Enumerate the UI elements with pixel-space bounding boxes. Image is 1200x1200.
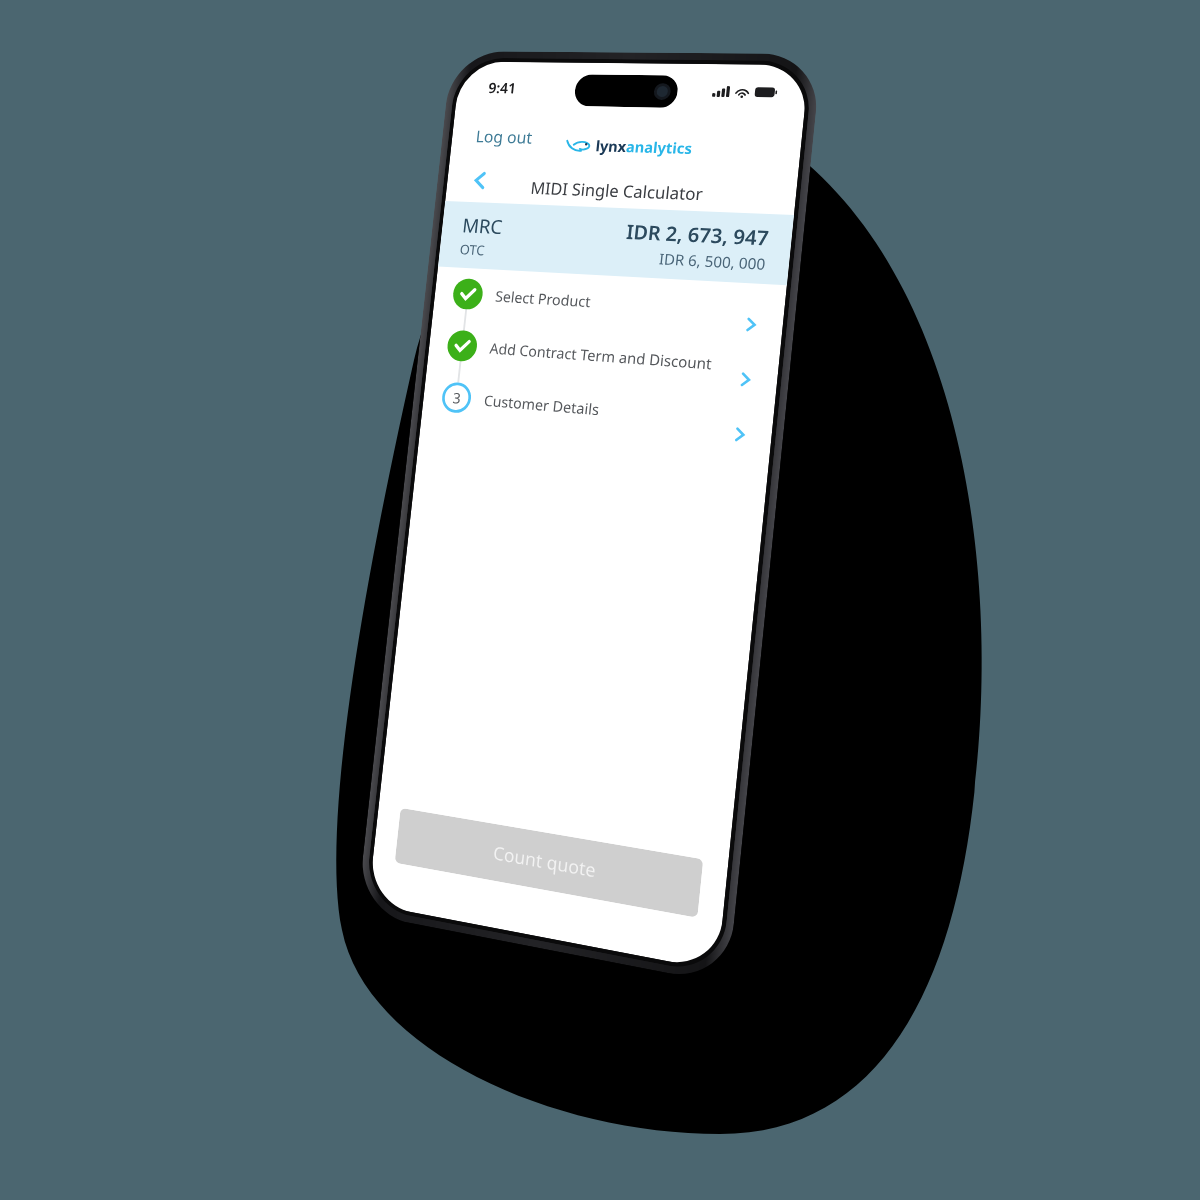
button[interactable]: Select Product bbox=[432, 266, 787, 340]
button[interactable]: Back bbox=[460, 161, 501, 200]
staticText: OTC bbox=[459, 240, 486, 259]
staticText: Count quote bbox=[492, 840, 597, 883]
button[interactable]: Count quote bbox=[395, 808, 703, 918]
staticText: Customer Details bbox=[483, 390, 731, 430]
staticText: Add Contract Term and Discount bbox=[489, 338, 736, 375]
staticText: lynxanalytics bbox=[595, 136, 694, 158]
staticText: IDR 2, 673, 947 bbox=[625, 218, 770, 251]
staticText: Select Product bbox=[494, 286, 742, 320]
staticText: Log out bbox=[475, 125, 533, 148]
staticText: 9:41 bbox=[488, 78, 517, 97]
staticText: MIDI Single Calculator bbox=[529, 176, 704, 205]
button[interactable]: Add Contract Term and Discount bbox=[427, 318, 781, 396]
button[interactable]: 3 bbox=[421, 369, 776, 451]
button[interactable]: Log out bbox=[471, 121, 538, 152]
staticText: MRC bbox=[461, 212, 504, 240]
staticText: IDR 6, 500, 000 bbox=[658, 248, 767, 274]
staticText: 3 bbox=[452, 388, 462, 408]
